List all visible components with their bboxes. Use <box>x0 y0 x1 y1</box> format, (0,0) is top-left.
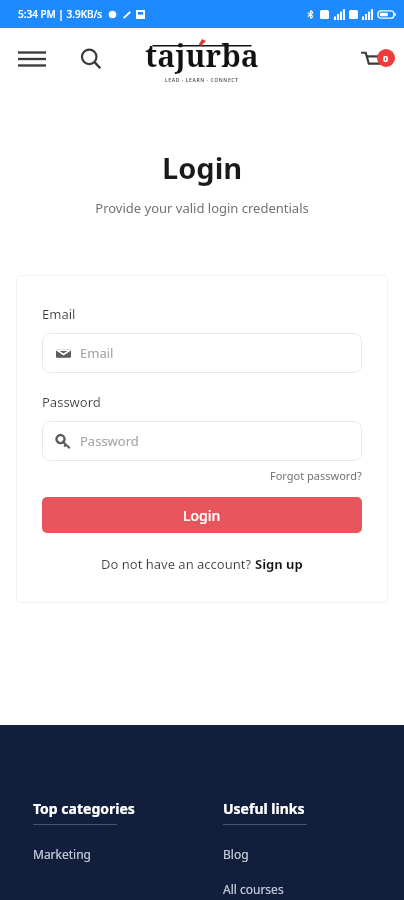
staticText: LEAD · LEARN · CONNECT <box>165 77 239 84</box>
staticText: Do not have an account? <box>101 555 255 573</box>
button[interactable]: Menu <box>10 37 54 81</box>
button[interactable]: All courses <box>223 881 284 897</box>
staticText: Top categories <box>33 799 135 818</box>
button[interactable]: Email <box>42 333 362 373</box>
button[interactable]: Password <box>42 421 362 461</box>
staticText: Login <box>162 148 243 187</box>
button[interactable]: Login <box>42 497 362 533</box>
button[interactable]: Cart, 0 items <box>350 36 396 82</box>
staticText: All courses <box>223 881 284 897</box>
staticText: 5:34 PM | 3.9KB/s <box>18 7 103 21</box>
staticText: Blog <box>223 846 249 862</box>
staticText: 0 <box>383 52 389 64</box>
staticText: Password <box>80 432 139 450</box>
staticText: Email <box>42 305 76 323</box>
button[interactable]: Tajurba home <box>145 35 259 84</box>
staticText: Login <box>183 506 221 525</box>
button[interactable]: Blog <box>223 846 249 862</box>
button[interactable]: Marketing <box>33 846 91 862</box>
staticText: Useful links <box>223 799 305 818</box>
staticText: tajurba <box>145 35 259 76</box>
button[interactable]: Search <box>69 37 113 81</box>
staticText: Sign up <box>255 555 303 573</box>
staticText: Email <box>80 344 114 362</box>
staticText: Provide your valid login credentials <box>95 199 309 217</box>
staticText: Forgot password? <box>270 468 362 483</box>
button[interactable]: Sign up <box>255 555 303 573</box>
button[interactable]: Forgot password? <box>270 468 362 483</box>
staticText: Password <box>42 393 101 411</box>
staticText: Marketing <box>33 846 91 862</box>
